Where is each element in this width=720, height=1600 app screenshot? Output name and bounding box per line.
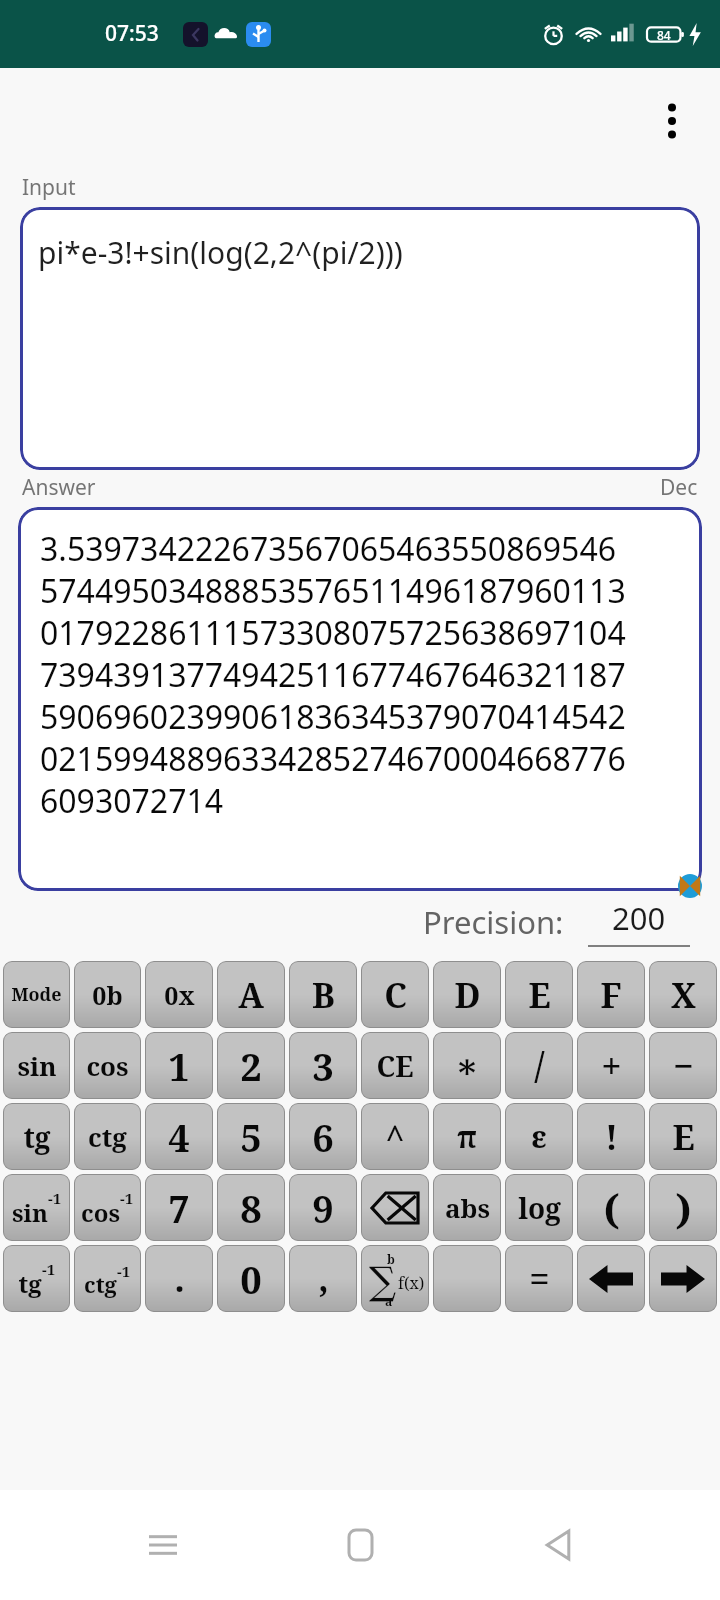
button[interactable]: sin [3, 1174, 70, 1241]
staticText: E [528, 972, 551, 1018]
button[interactable]: = [505, 1245, 573, 1312]
staticText: Mode [11, 982, 62, 1007]
button[interactable]: 1 [145, 1032, 213, 1099]
button[interactable]: Move left [577, 1245, 645, 1312]
button[interactable]: pi*e-3!+sin(log(2,2^(pi/2))) [20, 207, 700, 470]
button[interactable]: Recent apps [128, 1510, 198, 1580]
button[interactable]: CE [361, 1032, 429, 1099]
button[interactable]: 200 [588, 897, 690, 939]
staticText: cos [86, 1048, 129, 1083]
staticText: F [600, 972, 622, 1018]
button[interactable]: − [649, 1032, 717, 1099]
staticText: ) [675, 1181, 692, 1235]
staticText: 6 [312, 1111, 334, 1163]
button[interactable]: 9 [289, 1174, 357, 1241]
staticText: + [601, 1041, 622, 1090]
staticText: ∗ [455, 1046, 479, 1086]
button[interactable]: 0 [217, 1245, 285, 1312]
button[interactable]: , [289, 1245, 357, 1312]
button[interactable]: B [289, 961, 357, 1028]
button[interactable]: π [433, 1103, 501, 1170]
button[interactable] [433, 1245, 501, 1312]
button[interactable]: abs [433, 1174, 501, 1241]
staticText: A [238, 972, 264, 1018]
button[interactable]: 6 [289, 1103, 357, 1170]
button[interactable]: 2 [217, 1032, 285, 1099]
staticText: 59069602399061836345379070414542 [40, 695, 626, 737]
staticText: 6093072714 [40, 779, 224, 821]
button[interactable]: sin [3, 1032, 70, 1099]
button[interactable]: A [217, 961, 285, 1028]
staticText: 0b [92, 978, 123, 1012]
button[interactable]: tg [3, 1103, 70, 1170]
staticText: -1 [42, 1259, 56, 1279]
button[interactable]: 8 [217, 1174, 285, 1241]
staticText: ! [605, 1114, 618, 1160]
staticText: ∑ [369, 1259, 397, 1303]
staticText: 200 [612, 897, 666, 939]
staticText: tg [23, 1118, 51, 1156]
staticText: ^ [385, 1114, 405, 1160]
button[interactable]: More options [648, 97, 696, 145]
staticText: sin [17, 1048, 57, 1083]
button[interactable]: 4 [145, 1103, 213, 1170]
staticText: E [672, 1114, 695, 1160]
button[interactable]: cos [74, 1174, 141, 1241]
staticText: / [534, 1041, 545, 1090]
button[interactable]: Sum [361, 1245, 429, 1312]
button[interactable]: 0x [145, 961, 213, 1028]
button[interactable]: ) [649, 1174, 717, 1241]
staticText: b [387, 1251, 395, 1267]
staticText: 2 [240, 1040, 262, 1092]
button[interactable]: F [577, 961, 645, 1028]
staticText: log [518, 1189, 561, 1227]
staticText: C [384, 972, 407, 1018]
button[interactable]: / [505, 1032, 573, 1099]
button[interactable]: log [505, 1174, 573, 1241]
button[interactable]: 3 [289, 1032, 357, 1099]
button[interactable]: 0b [74, 961, 141, 1028]
button[interactable]: ( [577, 1174, 645, 1241]
button[interactable]: ε [505, 1103, 573, 1170]
button[interactable]: cos [74, 1032, 141, 1099]
button[interactable]: ctg [74, 1245, 141, 1312]
button[interactable]: Move right [649, 1245, 717, 1312]
staticText: . [174, 1254, 185, 1303]
staticText: 7 [168, 1182, 190, 1234]
button[interactable]: ∗ [433, 1032, 501, 1099]
button[interactable]: ctg [74, 1103, 141, 1170]
button[interactable]: E [649, 1103, 717, 1170]
button[interactable]: X [649, 961, 717, 1028]
button[interactable]: . [145, 1245, 213, 1312]
staticText: 4 [168, 1111, 190, 1163]
staticText: Precision: [423, 901, 564, 943]
staticText: a [385, 1293, 393, 1309]
button[interactable]: tg [3, 1245, 70, 1312]
staticText: − [673, 1041, 694, 1090]
staticText: Input [22, 173, 76, 202]
staticText: Dec [660, 473, 698, 502]
button[interactable]: D [433, 961, 501, 1028]
staticText: π [457, 1116, 477, 1157]
button[interactable]: C [361, 961, 429, 1028]
button[interactable]: ! [577, 1103, 645, 1170]
staticText: 3.539734222673567065463550869546 [40, 527, 617, 569]
staticText: ( [603, 1181, 620, 1235]
button[interactable]: Backspace [361, 1174, 429, 1241]
button[interactable]: 3.539734222673567065463550869546 [18, 507, 702, 891]
staticText: tg [18, 1267, 42, 1300]
button[interactable]: Back [523, 1510, 593, 1580]
staticText: 1 [168, 1040, 190, 1092]
button[interactable]: 5 [217, 1103, 285, 1170]
button[interactable]: Home [325, 1510, 395, 1580]
button[interactable]: 7 [145, 1174, 213, 1241]
button[interactable]: Mode [3, 961, 70, 1028]
staticText: 5 [240, 1111, 262, 1163]
staticText: 9 [312, 1182, 334, 1234]
staticText: -1 [120, 1188, 134, 1208]
button[interactable]: + [577, 1032, 645, 1099]
staticText: 0 [240, 1253, 262, 1305]
button[interactable]: ^ [361, 1103, 429, 1170]
staticText: 8 [240, 1182, 262, 1234]
button[interactable]: E [505, 961, 573, 1028]
